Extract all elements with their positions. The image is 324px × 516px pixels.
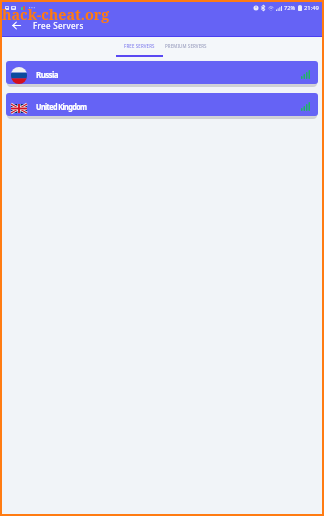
button[interactable]: PREMIUM SERVERS xyxy=(163,37,209,60)
staticText: FREE SERVERS xyxy=(124,43,155,49)
button[interactable]: Back xyxy=(2,13,31,37)
staticText: 72% xyxy=(284,4,296,12)
button[interactable]: Russia xyxy=(6,61,318,84)
staticText: United Kingdom xyxy=(36,101,87,112)
staticText: PREMIUM SERVERS xyxy=(165,43,207,49)
staticText: hack-cheat.org xyxy=(2,5,110,24)
button[interactable]: FREE SERVERS xyxy=(116,37,163,60)
staticText: 21:49 xyxy=(304,4,319,12)
staticText: Russia xyxy=(36,69,58,80)
staticText: Free Servers xyxy=(33,20,84,31)
button[interactable]: United Kingdom xyxy=(6,93,318,116)
